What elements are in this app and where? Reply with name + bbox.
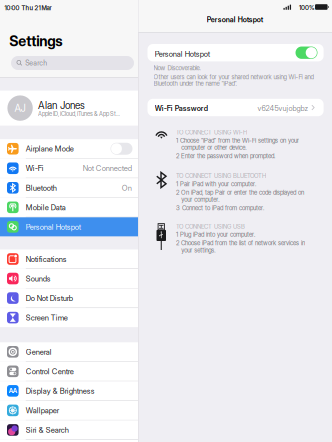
staticText: 1 Plug iPad into your computer. (176, 231, 255, 238)
staticText: 10:00 (4, 4, 19, 12)
staticText: Thu 21 Mar (21, 4, 51, 12)
staticText: AJ (15, 102, 26, 114)
staticText: Personal Hotspot (207, 15, 264, 24)
button[interactable]: Sounds (0, 269, 138, 288)
button[interactable]: Wallpaper (0, 401, 138, 420)
staticText: 1 Choose “iPad” from the Wi-Fi settings … (176, 137, 299, 144)
staticText: TO CONNECT USING USB (176, 223, 245, 230)
button[interactable]: Siri & Search (0, 420, 138, 439)
staticText: Bluetooth (26, 183, 57, 192)
staticText: v6245vujobgbz (258, 104, 309, 113)
button[interactable]: Personal Hotspot (295, 46, 317, 59)
button[interactable]: Mobile Data (0, 198, 138, 217)
staticText: TO CONNECT USING BLUETOOTH (176, 172, 266, 180)
staticText: AA (9, 387, 17, 395)
staticText: Control Centre (26, 367, 74, 376)
staticText: 2 On iPad, tap Pair or enter the code di… (176, 189, 304, 196)
staticText: Not Connected (83, 164, 132, 173)
staticText: 1 Pair iPad with your computer. (176, 180, 256, 188)
staticText: Apple ID, iCloud, iTunes & App St… (38, 110, 120, 117)
staticText: Bluetooth under the name “iPad”. (153, 80, 236, 87)
staticText: Mobile Data (26, 203, 66, 212)
staticText: General (26, 347, 52, 357)
staticText: Sounds (26, 274, 51, 283)
staticText: Airplane Mode (26, 144, 74, 153)
staticText: Wi-Fi (26, 164, 44, 173)
staticText: your settings. (181, 246, 215, 254)
button[interactable]: AA (0, 381, 138, 400)
staticText: Alan Jones (38, 99, 85, 111)
staticText: Siri & Search (26, 425, 69, 435)
button[interactable]: Do Not Disturb (0, 289, 138, 308)
staticText: On (122, 183, 132, 192)
button[interactable]: Screen Time (0, 308, 138, 327)
staticText: 2 Enter the password when prompted. (176, 152, 275, 160)
button[interactable]: Wi-Fi Password (147, 99, 324, 116)
staticText: 3 Connect to iPad from computer. (176, 204, 264, 212)
staticText: Do Not Disturb (26, 293, 73, 303)
button[interactable]: Notifications (0, 249, 138, 268)
staticText: Screen Time (26, 313, 68, 322)
button[interactable]: General (0, 342, 138, 361)
staticText: Personal Hotspot (26, 222, 81, 232)
button[interactable]: Bluetooth (0, 178, 138, 197)
staticText: 100% (299, 4, 315, 11)
staticText: computer or other device. (181, 144, 246, 151)
staticText: Search (25, 59, 47, 67)
button[interactable]: AJ (0, 91, 138, 126)
button[interactable]: Wi-Fi (0, 159, 138, 178)
staticText: Now Discoverable. (153, 64, 200, 72)
button[interactable]: Personal Hotspot (0, 217, 138, 236)
staticText: Wallpaper (26, 406, 59, 415)
staticText: your computer. (181, 196, 219, 203)
button[interactable]: Control Centre (0, 362, 138, 381)
staticText: Settings (9, 33, 62, 50)
staticText: 2 Choose iPad from the list of network s… (176, 239, 305, 247)
staticText: Wi-Fi Password (155, 104, 208, 113)
staticText: Display & Brightness (26, 386, 95, 396)
staticText: Notifications (26, 254, 67, 264)
staticText: Personal Hotspot (155, 49, 210, 58)
button[interactable]: Airplane Mode (0, 139, 138, 158)
staticText: Other users can look for your shared net… (153, 73, 313, 81)
staticText: TO CONNECT USING WI-FI (176, 129, 247, 136)
